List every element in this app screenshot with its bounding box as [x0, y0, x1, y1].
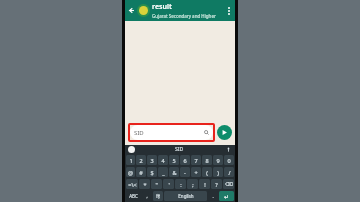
button[interactable]: Voice input — [225, 146, 232, 153]
button[interactable]: =\< — [126, 179, 138, 189]
staticText: / — [228, 169, 231, 176]
button[interactable]: # — [136, 167, 146, 177]
staticText: _ — [162, 169, 165, 176]
staticText: 8 — [205, 157, 209, 164]
button[interactable]: ; — [187, 179, 198, 189]
staticText: ; — [192, 181, 194, 188]
button[interactable]: ABC — [126, 191, 141, 201]
button[interactable]: 5 — [169, 155, 179, 165]
staticText: SID — [134, 129, 144, 137]
staticText: ? — [215, 181, 218, 188]
button[interactable]: ? — [211, 179, 222, 189]
button[interactable]: _ — [158, 167, 168, 177]
button[interactable]: @ — [126, 167, 135, 177]
staticText: . — [212, 193, 214, 199]
button[interactable]: 2 — [136, 155, 146, 165]
button[interactable]: 6 — [180, 155, 190, 165]
button[interactable]: Profile photo — [137, 4, 150, 17]
staticText: English — [178, 193, 194, 199]
staticText: ABC — [129, 193, 138, 199]
button[interactable]: 9 — [213, 155, 223, 165]
button[interactable]: Send — [217, 125, 232, 140]
button[interactable]: 4 — [158, 155, 168, 165]
button[interactable]: . — [208, 191, 218, 201]
staticText: हिं — [156, 193, 160, 199]
button[interactable]: More options — [225, 0, 233, 21]
button[interactable]: ( — [202, 167, 212, 177]
button[interactable]: / — [224, 167, 234, 177]
button[interactable]: हिं — [153, 191, 163, 201]
staticText: 2 — [139, 157, 143, 164]
staticText: 0 — [227, 157, 231, 164]
button[interactable]: English — [164, 191, 207, 201]
button[interactable]: ) — [213, 167, 223, 177]
button[interactable]: : — [175, 179, 186, 189]
button[interactable]: + — [191, 167, 201, 177]
button[interactable]: - — [180, 167, 190, 177]
staticText: & — [172, 169, 177, 176]
staticText: 4 — [161, 157, 165, 164]
button[interactable]: Back — [127, 6, 136, 15]
button[interactable]: 7 — [191, 155, 201, 165]
staticText: 5 — [172, 157, 176, 164]
button[interactable]: & — [169, 167, 179, 177]
staticText: Gujarat Secondary and Higher Second… — [152, 13, 225, 19]
staticText: ( — [206, 169, 208, 176]
staticText: $ — [150, 169, 154, 176]
button[interactable]: 3 — [147, 155, 157, 165]
staticText: result — [152, 2, 172, 12]
button[interactable]: 8 — [202, 155, 212, 165]
staticText: * — [143, 181, 147, 188]
button[interactable]: " — [151, 179, 162, 189]
button[interactable]: * — [139, 179, 150, 189]
staticText: 9 — [216, 157, 220, 164]
button[interactable]: ⌫ — [223, 179, 234, 189]
staticText: : — [180, 181, 182, 188]
staticText: " — [155, 181, 158, 188]
staticText: ↵ — [224, 193, 230, 200]
button[interactable]: , — [142, 191, 152, 201]
button[interactable]: ! — [199, 179, 210, 189]
button[interactable]: Enter — [219, 191, 234, 201]
staticText: =\< — [128, 181, 137, 188]
staticText: 7 — [194, 157, 198, 164]
staticText: ' — [168, 181, 170, 188]
staticText: 1 — [129, 157, 133, 164]
staticText: ! — [204, 181, 206, 188]
staticText: ⌫ — [225, 181, 233, 187]
staticText: @ — [128, 169, 133, 176]
button[interactable]: $ — [147, 167, 157, 177]
staticText: ) — [217, 169, 219, 176]
button[interactable]: 1 — [126, 155, 135, 165]
button[interactable]: ' — [163, 179, 174, 189]
staticText: # — [139, 169, 143, 176]
staticText: , — [146, 193, 148, 199]
staticText: 3 — [150, 157, 154, 164]
staticText: - — [184, 169, 186, 176]
staticText: 6 — [183, 157, 187, 164]
staticText: SID — [175, 146, 184, 153]
staticText: + — [194, 169, 198, 176]
button[interactable]: SID — [130, 125, 213, 140]
button[interactable]: 0 — [224, 155, 234, 165]
